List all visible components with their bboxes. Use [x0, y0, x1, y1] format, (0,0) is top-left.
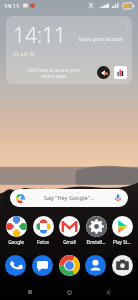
- staticText: Fotos: [37, 239, 49, 245]
- staticText: Click here to access your recent apps: [27, 67, 80, 79]
- button[interactable]: More options: [6, 16, 132, 84]
- staticText: Gmail: [63, 239, 76, 245]
- button[interactable]: Recents: [21, 284, 39, 300]
- button[interactable]: More options: [126, 20, 129, 29]
- button[interactable]: Gmail: [56, 216, 82, 245]
- staticText: Di, Juli 30: [13, 51, 35, 58]
- button[interactable]: Fotos: [30, 216, 56, 245]
- button[interactable]: Home: [60, 284, 78, 300]
- button[interactable]: Recent app 1: [97, 66, 110, 79]
- staticText: Einstell...: [86, 239, 106, 245]
- staticText: Tap to grant location: [78, 36, 123, 42]
- button[interactable]: Recent app 2: [114, 66, 127, 79]
- button[interactable]: Sag "Hey Google"...: [10, 189, 128, 207]
- button[interactable]: Phone: [5, 255, 26, 276]
- button[interactable]: Messages: [32, 255, 53, 276]
- staticText: 14:11: [4, 2, 20, 10]
- staticText: Play St...: [113, 239, 131, 245]
- button[interactable]: Chrome: [59, 255, 80, 276]
- button[interactable]: Tap to grant location: [78, 36, 123, 42]
- button[interactable]: Play St...: [109, 216, 135, 245]
- button[interactable]: Back: [99, 284, 117, 300]
- button[interactable]: Einstell...: [83, 216, 109, 245]
- staticText: Google: [8, 239, 24, 245]
- other: Voice search: [114, 194, 122, 202]
- button[interactable]: Camera: [112, 255, 133, 276]
- button[interactable]: Contacts: [85, 255, 106, 276]
- staticText: 14:11: [13, 21, 67, 50]
- button[interactable]: Google: [3, 216, 29, 245]
- staticText: Sag "Hey Google"...: [44, 194, 95, 202]
